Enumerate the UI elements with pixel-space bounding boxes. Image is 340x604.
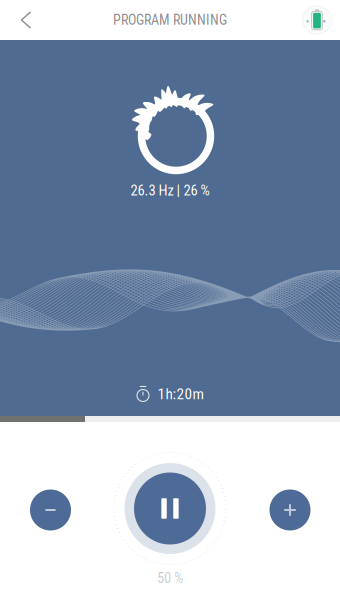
button[interactable]: Increase intensity [262,482,318,538]
button[interactable]: Back [6,0,46,40]
staticText: 50 % [157,569,183,587]
button[interactable]: Decrease intensity [22,482,78,538]
staticText: 1h:20m [157,385,204,403]
staticText: PROGRAM RUNNING [113,12,227,28]
button[interactable]: Pause program [110,448,230,568]
staticText: 26.3 Hz | 26 % [130,182,209,199]
